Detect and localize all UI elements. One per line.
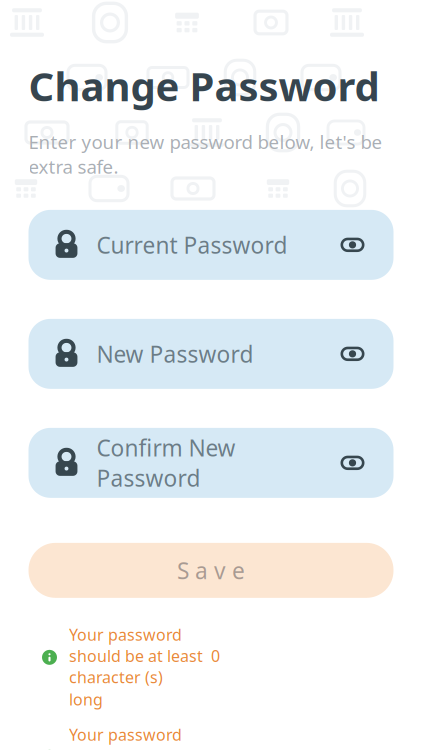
staticText: Your password should be at least 0 chara… — [69, 624, 220, 688]
staticText: S a v e — [177, 555, 245, 585]
button[interactable]: New Password — [28, 319, 393, 389]
staticText: Your password should contain at least 0 … — [69, 724, 201, 750]
button[interactable]: Current Password — [28, 210, 393, 280]
staticText: long — [69, 689, 103, 710]
button[interactable]: S a v e — [28, 543, 393, 598]
staticText: Change Password — [28, 59, 379, 112]
button[interactable]: Confirm New Password — [28, 428, 393, 498]
staticText: Enter your new password below, let's be … — [28, 129, 382, 179]
staticText: Current Password — [96, 230, 287, 260]
staticText: Confirm New Password — [96, 433, 235, 493]
staticText: New Password — [96, 339, 253, 369]
